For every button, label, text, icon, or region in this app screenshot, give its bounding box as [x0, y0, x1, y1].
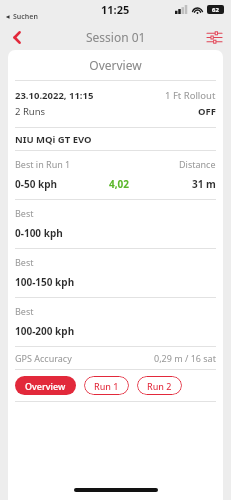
staticText: Session 01 — [86, 29, 146, 45]
staticText: 23.10.2022, 11:15 — [15, 89, 94, 102]
staticText: Run 2 — [147, 380, 172, 392]
staticText: Run 1 — [94, 380, 119, 392]
staticText: NIU MQi GT EVO — [15, 133, 92, 146]
staticText: 31 m — [192, 177, 216, 191]
staticText: 2 Runs — [15, 105, 46, 118]
staticText: 0-50 kph — [15, 177, 57, 191]
staticText: Overview — [25, 380, 66, 392]
staticText: OFF — [198, 105, 216, 118]
button[interactable]: Settings — [203, 26, 225, 48]
staticText: 62 — [212, 6, 219, 14]
staticText: GPS Accuracy — [15, 352, 72, 364]
staticText: 0,29 m / 16 sat — [154, 352, 216, 364]
staticText: 1 Ft Rollout — [165, 89, 216, 102]
staticText: 100-200 kph — [15, 324, 75, 338]
button[interactable]: Overview — [15, 376, 76, 395]
button[interactable]: Run 2 — [137, 376, 182, 395]
button[interactable]: Run 1 — [84, 376, 129, 395]
button[interactable]: Back — [6, 26, 28, 48]
staticText: Best in Run 1 — [15, 158, 71, 170]
staticText: Best — [15, 256, 34, 268]
staticText: Best — [15, 207, 34, 219]
staticText: 11:25 — [101, 2, 130, 17]
staticText: 4,02 — [109, 177, 130, 191]
staticText: 0-100 kph — [15, 226, 63, 240]
staticText: Distance — [179, 158, 216, 170]
staticText: Overview — [8, 57, 223, 73]
staticText: Suchen — [13, 12, 38, 22]
staticText: 100-150 kph — [15, 275, 75, 289]
staticText: Best — [15, 305, 34, 317]
